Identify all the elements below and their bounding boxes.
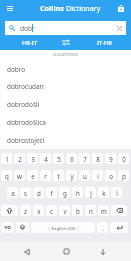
button[interactable]: HR-IT <box>8 35 52 50</box>
button[interactable]: Swap languages <box>59 35 73 50</box>
button[interactable]: dobro <box>0 60 131 78</box>
button[interactable]: Clear search <box>112 21 126 35</box>
staticText: t <box>57 172 60 180</box>
staticText: 1 <box>5 155 9 163</box>
staticText: c <box>50 207 53 215</box>
staticText: SUGGESTIONS <box>53 52 79 57</box>
staticText: 9 <box>109 155 113 163</box>
staticText: dobrostojeći <box>7 136 45 145</box>
button[interactable]: q <box>1 170 12 181</box>
staticText: 2 <box>18 155 22 163</box>
button[interactable]: i <box>92 170 103 181</box>
button[interactable]: 4 <box>40 153 51 164</box>
button[interactable]: Keyboard settings <box>16 222 29 233</box>
button[interactable]: 8 <box>92 153 103 164</box>
button[interactable]: 5 <box>53 153 64 164</box>
staticText: . <box>102 224 104 232</box>
button[interactable]: Shift <box>1 205 18 216</box>
button[interactable]: f <box>46 187 57 198</box>
button[interactable]: h <box>72 187 83 198</box>
button[interactable]: u <box>79 170 90 181</box>
staticText: r <box>44 172 47 180</box>
staticText: n <box>89 207 93 215</box>
button[interactable]: 3 <box>27 153 38 164</box>
button[interactable]: b <box>72 205 83 216</box>
button[interactable]: Menu <box>3 1 17 15</box>
staticText: 0 <box>122 155 126 163</box>
staticText: y <box>70 172 74 180</box>
button[interactable]: Backspace <box>111 205 127 216</box>
staticText: d <box>37 189 41 197</box>
staticText: g <box>63 189 67 197</box>
button[interactable]: l <box>111 187 122 198</box>
staticText: o <box>109 172 113 180</box>
button[interactable]: a <box>7 187 18 198</box>
button[interactable]: 9 <box>105 153 116 164</box>
staticText: k <box>102 189 106 197</box>
staticText: IT-HR <box>97 39 112 47</box>
staticText: dobroćudan <box>7 82 44 91</box>
button[interactable]: w <box>14 170 25 181</box>
staticText: p <box>122 172 126 180</box>
button[interactable]: dobrostojeći <box>0 131 131 149</box>
button[interactable]: r <box>40 170 51 181</box>
button[interactable]: p <box>118 170 129 181</box>
button[interactable]: k <box>98 187 109 198</box>
button[interactable]: o <box>105 170 116 181</box>
button[interactable]: 2 <box>14 153 25 164</box>
button[interactable]: dobroćudan <box>0 77 131 95</box>
button[interactable]: z <box>20 205 31 216</box>
button[interactable]: j <box>85 187 96 198</box>
staticText: dobr <box>20 24 35 33</box>
staticText: 5 <box>57 155 61 163</box>
staticText: m <box>101 207 107 215</box>
staticText: 6 <box>70 155 74 163</box>
button[interactable]: g <box>59 187 70 198</box>
staticText: u <box>83 172 87 180</box>
button[interactable]: m <box>98 205 109 216</box>
button[interactable]: v <box>59 205 70 216</box>
button[interactable]: Symbols <box>1 222 14 233</box>
button[interactable]: ‹ English (US) › <box>31 222 95 233</box>
button[interactable]: Store <box>114 1 128 15</box>
button[interactable]: Hide keyboard <box>93 242 113 261</box>
staticText: b <box>76 207 80 215</box>
button[interactable]: d <box>33 187 44 198</box>
button[interactable]: e <box>27 170 38 181</box>
staticText: 3 <box>31 155 35 163</box>
staticText: Dictionary <box>66 3 101 13</box>
button[interactable]: IT-HR <box>82 35 126 50</box>
staticText: Collins <box>40 3 64 13</box>
staticText: z <box>24 207 27 215</box>
staticText: h <box>76 189 80 197</box>
staticText: l <box>116 189 118 197</box>
button[interactable]: . <box>97 222 108 233</box>
staticText: x <box>37 207 41 215</box>
staticText: f <box>50 189 53 197</box>
button[interactable]: s <box>20 187 31 198</box>
staticText: dobrodošli <box>7 100 40 109</box>
staticText: q <box>5 172 9 180</box>
button[interactable]: Home <box>56 242 76 261</box>
button[interactable]: c <box>46 205 57 216</box>
button[interactable]: dobrodošlica <box>0 113 131 131</box>
button[interactable]: n <box>85 205 96 216</box>
button[interactable]: 1 <box>1 153 12 164</box>
staticText: ‹ English (US) › <box>49 225 78 231</box>
button[interactable]: 6 <box>66 153 77 164</box>
button[interactable]: dobrodošli <box>0 95 131 113</box>
staticText: HR-IT <box>22 39 38 47</box>
button[interactable]: t <box>53 170 64 181</box>
button[interactable]: x <box>33 205 44 216</box>
button[interactable]: Back <box>17 242 37 261</box>
staticText: 7 <box>83 155 87 163</box>
button[interactable]: Enter <box>110 222 128 233</box>
staticText: j <box>90 189 92 197</box>
button[interactable]: 0 <box>118 153 129 164</box>
button[interactable]: 7 <box>79 153 90 164</box>
staticText: w <box>17 172 22 180</box>
staticText: 4 <box>44 155 48 163</box>
staticText: s <box>24 189 27 197</box>
staticText: i <box>97 172 99 180</box>
button[interactable]: y <box>66 170 77 181</box>
